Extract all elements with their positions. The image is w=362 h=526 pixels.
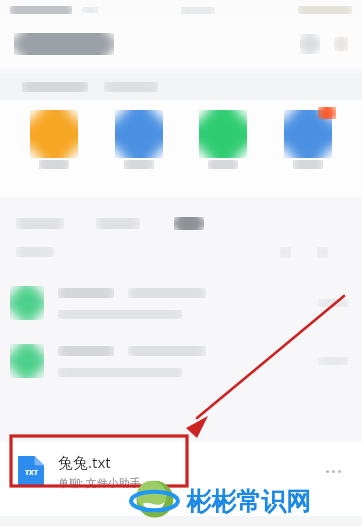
button[interactable]: TXT — [0, 442, 362, 500]
button[interactable]: Shortcut — [277, 110, 339, 169]
button[interactable] — [0, 274, 362, 332]
button[interactable]: More options — [316, 454, 350, 488]
button[interactable]: Shortcut — [23, 110, 85, 169]
staticText: TXT — [25, 468, 38, 478]
staticText: 彬彬常识网 — [186, 486, 311, 517]
button[interactable] — [0, 332, 362, 390]
staticText: 单聊: 文件小助手 — [58, 475, 141, 490]
staticText: 兔兔.txt — [58, 452, 111, 472]
button[interactable]: Shortcut — [108, 110, 170, 169]
button[interactable]: Shortcut — [192, 110, 254, 169]
